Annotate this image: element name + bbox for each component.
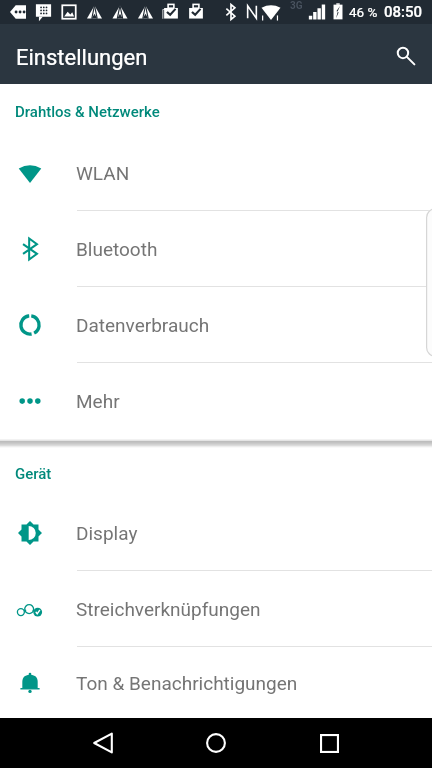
button[interactable]: Streichverknüpfungen <box>0 571 432 647</box>
staticText: 3G <box>290 0 303 12</box>
staticText: Streichverknüpfungen <box>76 598 261 620</box>
staticText: Bluetooth <box>76 238 158 260</box>
button[interactable]: Übersicht <box>301 718 357 768</box>
staticText: Datenverbrauch <box>76 314 210 336</box>
staticText: Display <box>76 522 138 544</box>
staticText: WLAN <box>76 162 130 184</box>
button[interactable]: Mehr <box>0 363 432 439</box>
button[interactable]: Startbildschirm <box>188 718 244 768</box>
button[interactable]: Bluetooth <box>0 211 432 287</box>
staticText: Ton & Benachrichtigungen <box>76 672 298 694</box>
staticText: Gerät <box>15 465 52 483</box>
button[interactable]: Zurück <box>75 718 131 768</box>
button[interactable]: Display <box>0 495 432 571</box>
staticText: 46 % <box>349 4 378 20</box>
staticText: Drahtlos & Netzwerke <box>15 103 160 121</box>
button[interactable]: Suchen <box>380 30 428 78</box>
button[interactable]: Datenverbrauch <box>0 287 432 363</box>
button[interactable]: WLAN <box>0 135 432 211</box>
button[interactable]: Ton & Benachrichtigungen <box>0 647 432 718</box>
staticText: Mehr <box>76 390 120 412</box>
staticText: 08:50 <box>384 3 423 21</box>
staticText: Einstellungen <box>16 45 148 71</box>
